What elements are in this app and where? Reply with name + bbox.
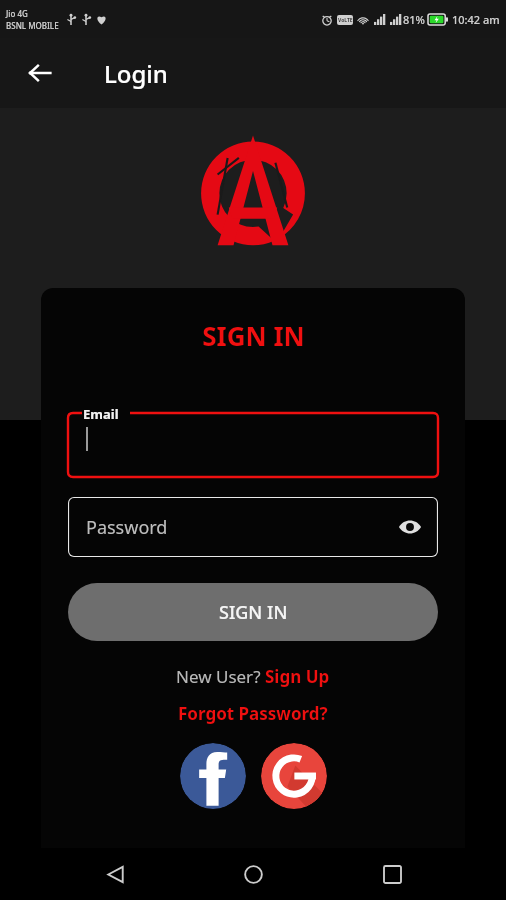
button[interactable]: Home (229, 850, 277, 898)
button[interactable]: Sign in with Google (261, 743, 327, 809)
button[interactable]: Back (91, 850, 139, 898)
staticText: Sign Up (265, 665, 330, 688)
button[interactable]: Password (68, 497, 438, 557)
staticText: 81% (403, 12, 425, 27)
button[interactable]: Back (16, 49, 64, 97)
staticText: Password (86, 515, 168, 540)
staticText: Login (104, 57, 168, 90)
staticText: 10:42 am (452, 12, 500, 27)
button[interactable]: Sign in with Facebook (180, 743, 246, 809)
staticText: VoLTE (338, 17, 353, 24)
button[interactable]: Email (68, 405, 438, 477)
button[interactable]: Forgot Password? (178, 702, 328, 725)
button[interactable]: SIGN IN (68, 583, 438, 641)
staticText: SIGN IN (219, 600, 288, 625)
staticText: Forgot Password? (178, 702, 328, 725)
staticText: BSNL MOBILE (6, 20, 59, 31)
staticText: Jio 4G (6, 8, 28, 19)
button[interactable]: Sign Up (265, 665, 330, 688)
staticText: SIGN IN (202, 318, 305, 353)
button[interactable]: Recent apps (368, 850, 416, 898)
staticText: New User? (176, 665, 265, 688)
button[interactable]: Show password (392, 509, 428, 545)
staticText: Email (83, 405, 119, 423)
